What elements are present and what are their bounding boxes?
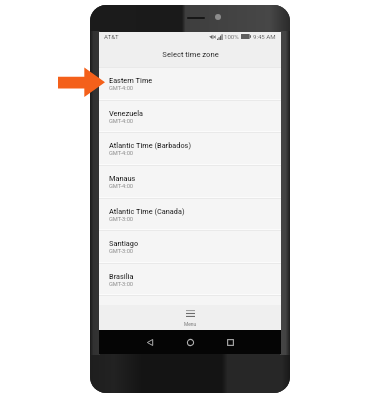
button[interactable]: Menu — [99, 305, 281, 330]
staticText: Atlantic Time (Canada) — [109, 207, 185, 216]
staticText: GMT-4:00 — [109, 118, 134, 125]
staticText: Santiago — [109, 239, 139, 248]
button[interactable]: Manaus — [99, 166, 281, 198]
button[interactable]: Santiago — [99, 231, 281, 263]
staticText: Eastern Time — [109, 76, 153, 85]
staticText: Menu — [184, 321, 197, 327]
staticText: Atlantic Time (Barbados) — [109, 141, 191, 150]
button[interactable]: Venezuela — [99, 101, 281, 133]
staticText: GMT-3:00 — [109, 216, 134, 223]
staticText: 9:45 AM — [253, 33, 276, 40]
button[interactable]: Atlantic Time (Barbados) — [99, 133, 281, 165]
staticText: Manaus — [109, 174, 136, 183]
staticText: Venezuela — [109, 109, 144, 118]
button[interactable]: Home — [170, 330, 210, 354]
staticText: GMT-3:00 — [109, 281, 134, 288]
button[interactable]: Atlantic Time (Canada) — [99, 199, 281, 231]
button[interactable]: Back — [130, 330, 170, 354]
staticText: Select time zone — [162, 50, 219, 59]
staticText: 100% — [224, 33, 239, 40]
staticText: Brasilia — [109, 272, 134, 281]
staticText: GMT-4:00 — [109, 85, 134, 92]
button[interactable]: Recents — [210, 330, 250, 354]
staticText: GMT-4:00 — [109, 183, 134, 190]
staticText: AT&T — [104, 33, 119, 40]
staticText: GMT-3:00 — [109, 248, 134, 255]
staticText: GMT-4:00 — [109, 150, 134, 157]
button[interactable]: Brasilia — [99, 264, 281, 296]
button[interactable]: Eastern Time — [99, 68, 281, 100]
